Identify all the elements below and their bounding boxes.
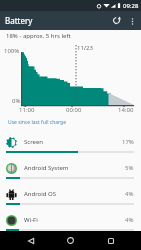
- button[interactable]: Screen: [0, 133, 141, 159]
- staticText: 11:00: [19, 106, 35, 114]
- button[interactable]: Refresh: [108, 12, 125, 29]
- staticText: 17%: [122, 138, 134, 146]
- button[interactable]: Android System: [0, 159, 141, 185]
- staticText: 4%: [125, 190, 134, 198]
- button[interactable]: Android OS: [0, 185, 141, 211]
- button[interactable]: Back: [21, 231, 40, 250]
- staticText: 5%: [125, 164, 134, 172]
- staticText: Android OS: [24, 190, 56, 198]
- button[interactable]: Wi-Fi: [0, 211, 141, 237]
- button[interactable]: More options: [125, 14, 139, 28]
- button[interactable]: Recent apps: [101, 231, 120, 250]
- staticText: Screen: [24, 138, 44, 146]
- staticText: 0%: [12, 97, 21, 105]
- button[interactable]: Use since last full charge: [5, 117, 69, 128]
- staticText: 14:00: [118, 106, 134, 114]
- staticText: 100%: [4, 47, 20, 55]
- staticText: Wi-Fi: [24, 216, 38, 224]
- staticText: 09:28: [123, 2, 139, 10]
- staticText: Battery: [5, 15, 33, 26]
- staticText: Android System: [24, 164, 69, 172]
- button[interactable]: Home: [61, 231, 80, 250]
- staticText: 18% - approx. 5 hrs left: [6, 32, 71, 40]
- staticText: Use since last full charge: [8, 119, 66, 126]
- staticText: 11/23: [77, 44, 93, 52]
- staticText: 00:00: [66, 106, 82, 114]
- staticText: 4%: [125, 216, 134, 224]
